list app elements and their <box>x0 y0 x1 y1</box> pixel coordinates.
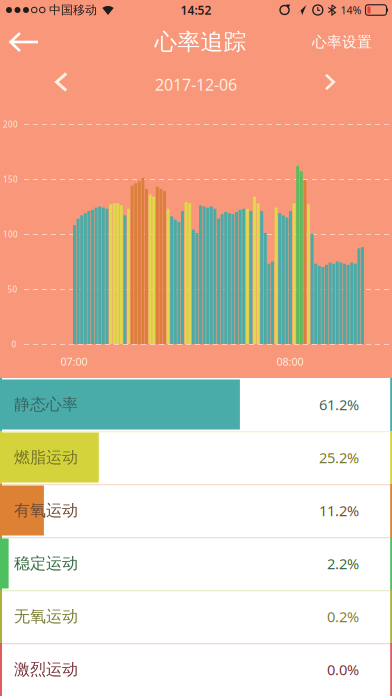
button[interactable]: Previous day <box>0 64 68 100</box>
staticText: 0.0% <box>327 660 359 679</box>
staticText: 07:00 <box>60 354 87 369</box>
staticText: 14:52 <box>180 2 211 18</box>
staticText: 静态心率 <box>14 395 78 414</box>
staticText: 25.2% <box>319 448 359 467</box>
staticText: 心率设置 <box>312 33 372 51</box>
button[interactable]: Next day <box>325 65 392 99</box>
staticText: 0 <box>11 339 16 350</box>
staticText: 150 <box>3 174 18 185</box>
button[interactable]: Back <box>0 22 39 62</box>
staticText: 11.2% <box>319 501 359 520</box>
staticText: 100 <box>3 229 18 240</box>
staticText: 14% <box>340 3 361 17</box>
button[interactable]: 心率设置 <box>312 23 392 61</box>
staticText: 燃脂运动 <box>14 448 78 467</box>
staticText: 2017-12-06 <box>155 74 237 95</box>
staticText: 有氧运动 <box>14 501 78 520</box>
staticText: 2.2% <box>327 554 359 573</box>
staticText: 61.2% <box>319 395 359 414</box>
staticText: 08:00 <box>276 354 303 369</box>
staticText: 0.2% <box>327 607 359 626</box>
staticText: 稳定运动 <box>14 554 78 573</box>
staticText: 心率追踪 <box>154 28 246 56</box>
staticText: 50 <box>7 284 17 295</box>
staticText: 无氧运动 <box>14 607 78 626</box>
staticText: 中国移动 <box>49 3 97 17</box>
staticText: 激烈运动 <box>14 660 78 679</box>
staticText: 200 <box>3 119 18 130</box>
